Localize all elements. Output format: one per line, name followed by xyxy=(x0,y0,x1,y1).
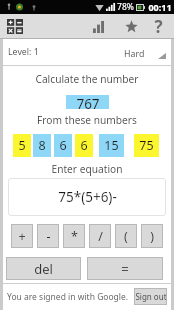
staticText: 8 xyxy=(38,137,46,154)
staticText: From these numbers xyxy=(3,113,171,127)
button[interactable]: Achievements xyxy=(115,14,148,39)
staticText: 5 xyxy=(18,137,26,154)
staticText: 767 xyxy=(76,95,100,109)
staticText: ? xyxy=(154,15,163,38)
staticText: You are signed in with Google. xyxy=(7,291,129,303)
button[interactable]: 5 xyxy=(13,134,31,157)
staticText: 00:11 xyxy=(148,1,172,13)
button[interactable]: / xyxy=(89,224,111,248)
button[interactable]: App icon xyxy=(7,19,23,34)
button[interactable]: 75*(5+6)- xyxy=(8,178,166,216)
button[interactable]: 6 xyxy=(54,134,72,157)
button[interactable]: Hard xyxy=(124,39,166,65)
staticText: = xyxy=(121,260,129,278)
staticText: 6 xyxy=(80,137,88,154)
staticText: ) xyxy=(150,228,154,245)
staticText: 78% xyxy=(117,1,134,13)
button[interactable]: 8 xyxy=(33,134,51,157)
staticText: 6 xyxy=(59,137,67,154)
staticText: + xyxy=(18,228,26,245)
button[interactable]: * xyxy=(63,224,85,248)
staticText: Enter equation xyxy=(3,162,171,176)
staticText: 15 xyxy=(104,137,119,154)
staticText: 75*(5+6)- xyxy=(58,188,117,206)
button[interactable]: 15 xyxy=(99,134,124,157)
button[interactable]: Sign out xyxy=(134,288,167,305)
button[interactable]: - xyxy=(37,224,59,248)
staticText: * xyxy=(71,228,78,245)
button[interactable]: del xyxy=(6,257,81,280)
staticText: Sign out xyxy=(135,291,167,302)
staticText: Calculate the number xyxy=(3,72,171,86)
staticText: / xyxy=(98,228,103,245)
staticText: - xyxy=(46,228,51,245)
staticText: 75 xyxy=(139,137,154,154)
staticText: Hard xyxy=(124,48,145,60)
button[interactable]: 6 xyxy=(75,134,93,157)
button[interactable]: = xyxy=(87,257,163,280)
staticText: ( xyxy=(124,228,128,245)
staticText: del xyxy=(34,260,53,278)
button[interactable]: ( xyxy=(115,224,137,248)
staticText: Level: 1 xyxy=(8,46,39,58)
button[interactable]: + xyxy=(11,224,33,248)
button[interactable]: Leaderboards xyxy=(82,14,115,39)
button[interactable]: 75 xyxy=(134,134,159,157)
button[interactable]: ) xyxy=(141,224,163,248)
button[interactable]: Help xyxy=(148,14,169,39)
